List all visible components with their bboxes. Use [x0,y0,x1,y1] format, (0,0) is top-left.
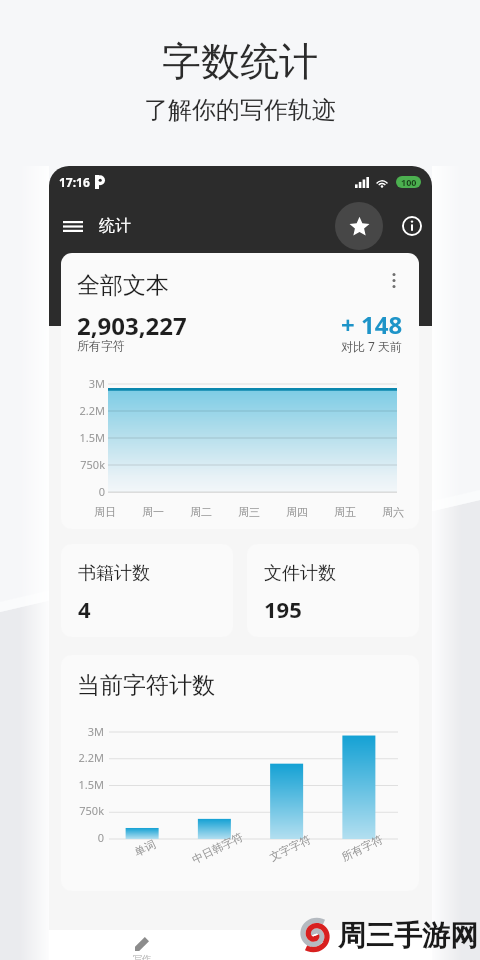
button[interactable]: Files [240,930,336,960]
staticText: 周二 [190,505,212,519]
staticText: 周一 [142,505,164,519]
button[interactable]: Menu [55,208,91,244]
staticText: 3M [88,376,105,391]
button[interactable]: Favorite [335,202,383,250]
staticText: 4 [78,594,91,624]
button[interactable]: 文件计数 [247,544,419,637]
staticText: 写作 [133,953,151,960]
staticText: 当前字符计数 [77,671,215,700]
staticText: 17:16 [59,174,90,190]
staticText: 2,903,227 [77,309,187,342]
staticText: 所有字符 [77,338,125,353]
staticText: 3M [87,724,104,739]
staticText: 字数统计 [162,37,318,86]
staticText: 对比 7 天前 [341,338,403,354]
staticText: 周四 [286,505,308,519]
staticText: 2.2M [78,750,104,765]
staticText: 文件计数 [264,562,336,585]
staticText: 100 [401,176,417,188]
staticText: 全部文本 [77,271,169,300]
staticText: 1.5M [78,777,104,792]
staticText: 周五 [334,505,356,519]
button[interactable]: Info [397,211,427,241]
staticText: 750k [80,457,105,472]
staticText: 195 [264,594,302,624]
button[interactable]: Edit [49,930,144,960]
staticText: 中日韩字符 [190,830,245,866]
staticText: + 148 [341,308,403,341]
staticText: 0 [98,484,105,499]
staticText: 周三手游网 [338,918,478,952]
button[interactable]: 书籍计数 [61,544,233,637]
button[interactable]: Stats [336,930,432,960]
staticText: 1.5M [79,430,105,445]
staticText: 周六 [382,505,404,519]
staticText: 统计 [99,216,131,236]
staticText: 0 [97,830,104,845]
staticText: 所有字符 [339,832,385,864]
staticText: 单词 [132,837,158,859]
staticText: 2.2M [79,403,105,418]
staticText: 750k [79,803,104,818]
button[interactable]: Books [144,930,240,960]
staticText: 书籍计数 [78,562,150,585]
staticText: 周日 [94,505,116,519]
staticText: 了解你的写作轨迹 [144,95,336,125]
staticText: 文字字符 [267,832,313,864]
button[interactable]: More options [381,267,407,293]
staticText: 周三 [238,505,260,519]
